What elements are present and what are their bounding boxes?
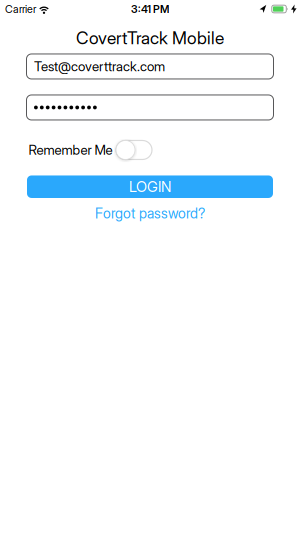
staticText: CovertTrack Mobile — [76, 27, 224, 48]
staticText: 3:41 PM — [131, 2, 169, 15]
button[interactable]: Test@coverttrack.com — [26, 54, 273, 79]
button[interactable]: Password — [26, 95, 273, 120]
staticText: Test@coverttrack.com — [34, 58, 165, 74]
staticText: Remember Me — [28, 142, 112, 158]
button[interactable]: Remember Me — [116, 140, 152, 159]
staticText: Forgot password? — [95, 205, 205, 222]
button[interactable]: LOGIN — [27, 175, 273, 198]
button[interactable]: Forgot password? — [95, 205, 205, 222]
staticText: Carrier — [5, 2, 36, 15]
staticText: LOGIN — [129, 178, 171, 195]
